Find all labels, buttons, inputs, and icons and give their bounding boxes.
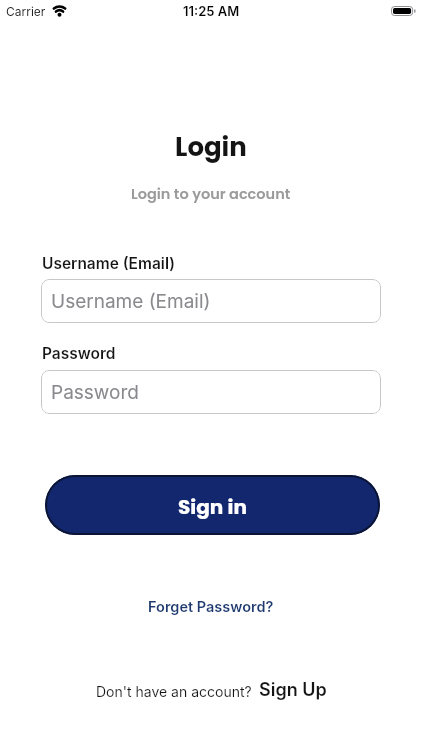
staticText: Password <box>42 344 116 363</box>
button[interactable]: Sign Up <box>259 679 327 701</box>
button[interactable]: Sign in <box>45 475 380 535</box>
button[interactable]: Forget Password? <box>148 598 274 616</box>
staticText: Password <box>51 381 139 404</box>
staticText: Don't have an account? <box>96 683 252 700</box>
staticText: 11:25 AM <box>183 3 240 19</box>
staticText: Username (Email) <box>42 254 175 273</box>
staticText: Sign in <box>178 493 247 521</box>
staticText: Login <box>175 129 247 165</box>
staticText: Sign Up <box>259 679 327 701</box>
staticText: Carrier <box>6 4 46 19</box>
staticText: Login to your account <box>131 184 291 204</box>
button[interactable]: Password <box>41 370 381 414</box>
staticText: Username (Email) <box>51 290 211 313</box>
button[interactable]: Username (Email) <box>41 279 381 323</box>
staticText: Forget Password? <box>148 598 274 616</box>
